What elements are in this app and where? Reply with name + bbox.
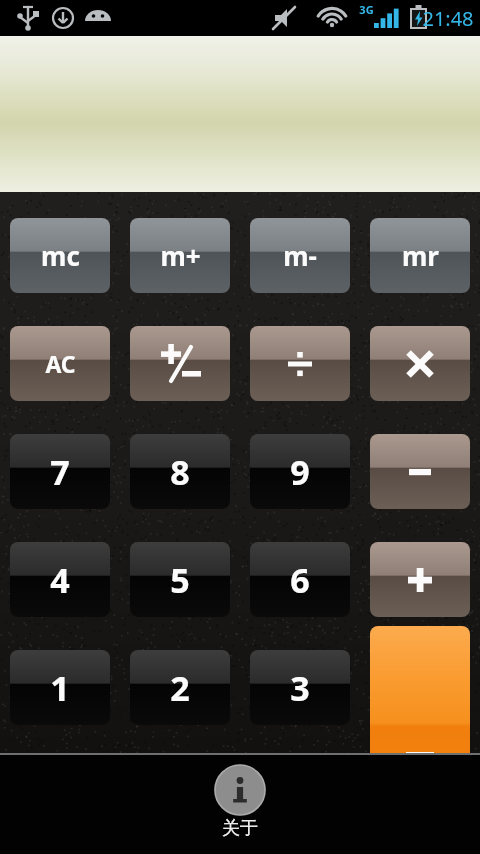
- button[interactable]: m-: [250, 218, 350, 293]
- staticText: 2: [170, 665, 190, 711]
- button[interactable]: 5: [130, 542, 230, 617]
- staticText: m-: [283, 238, 317, 273]
- staticText: mc: [41, 238, 80, 273]
- button[interactable]: 1: [10, 650, 110, 725]
- button[interactable]: 4: [10, 542, 110, 617]
- button[interactable]: About: [215, 765, 265, 840]
- button[interactable]: 2: [130, 650, 230, 725]
- button[interactable]: mr: [370, 218, 470, 293]
- button[interactable]: Plus minus: [130, 326, 230, 401]
- button[interactable]: 9: [250, 434, 350, 509]
- button[interactable]: Divide: [250, 326, 350, 401]
- staticText: 5: [170, 557, 190, 603]
- staticText: 6: [290, 557, 310, 603]
- button[interactable]: 3: [250, 650, 350, 725]
- staticText: 1: [50, 665, 70, 711]
- staticText: AC: [45, 348, 76, 379]
- button[interactable]: Multiply: [370, 326, 470, 401]
- button[interactable]: Equals: [370, 626, 470, 809]
- staticText: 3: [290, 665, 310, 711]
- staticText: mr: [402, 238, 439, 273]
- staticText: 3G: [359, 2, 374, 17]
- button[interactable]: Plus: [370, 542, 470, 617]
- staticText: 关于: [222, 817, 258, 840]
- staticText: 8: [170, 449, 190, 495]
- button[interactable]: m+: [130, 218, 230, 293]
- button[interactable]: About: [215, 765, 265, 840]
- button[interactable]: 6: [250, 542, 350, 617]
- button[interactable]: mc: [10, 218, 110, 293]
- button[interactable]: Display: [0, 36, 480, 192]
- staticText: 21:48: [422, 5, 474, 32]
- button[interactable]: AC: [10, 326, 110, 401]
- button[interactable]: 8: [130, 434, 230, 509]
- staticText: m+: [160, 238, 201, 273]
- staticText: 7: [50, 449, 70, 495]
- button[interactable]: 7: [10, 434, 110, 509]
- staticText: 9: [290, 449, 310, 495]
- staticText: 关于: [222, 817, 258, 840]
- staticText: 4: [50, 557, 70, 603]
- button[interactable]: Minus: [370, 434, 470, 509]
